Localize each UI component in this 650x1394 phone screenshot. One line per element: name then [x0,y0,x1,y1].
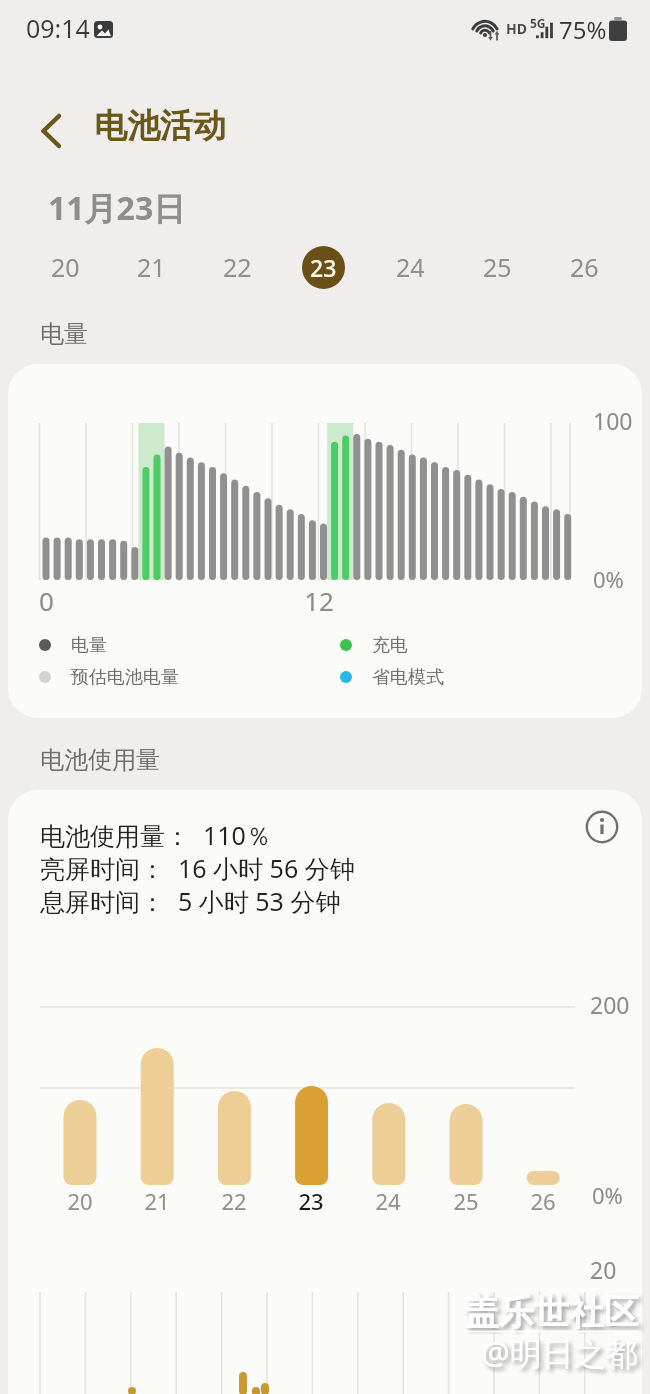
button[interactable]: 24 [367,245,454,289]
button[interactable]: 21 [108,245,194,289]
button[interactable]: 26 [541,245,628,289]
staticText: 充电 [372,634,408,657]
staticText: 20 [67,1186,93,1216]
button[interactable]: 22 [194,245,280,289]
staticText: 22 [223,250,252,284]
staticText: 23 [310,252,337,283]
staticText: 25 [453,1186,479,1216]
staticText: 电池活动 [94,105,226,147]
staticText: 24 [375,1186,401,1216]
staticText: 0 [39,583,54,618]
button[interactable]: 23 [280,245,367,289]
staticText: 22 [221,1186,247,1216]
staticText: 20 [51,250,80,284]
staticText: 电池使用量 [40,745,160,775]
button[interactable]: 20 [22,245,108,289]
staticText: 0% [593,564,624,594]
staticText: 26 [530,1186,556,1216]
staticText: 亮屏时间： 16 小时 56 分钟 [40,851,355,885]
staticText: 24 [396,250,425,284]
button[interactable] [585,810,619,844]
staticText: 电量 [71,634,107,657]
staticText: 200 [590,989,630,1020]
staticText: 21 [137,250,166,284]
staticText: 100 [593,405,633,436]
button[interactable]: 25 [454,245,541,289]
staticText: 0% [592,1180,623,1210]
staticText: 75% [559,13,607,46]
staticText: 23 [298,1186,324,1216]
staticText: 21 [144,1186,170,1216]
staticText: 5G [530,15,546,31]
staticText: 预估电池电量 [71,666,179,689]
staticText: 盖乐世社区 [464,1290,639,1334]
staticText: 11月23日 [48,186,186,230]
staticText: 电量 [40,319,88,349]
staticText: 20 [590,1254,617,1285]
staticText: 电池使用量： 110％ [40,818,271,852]
staticText: 09:14 [26,11,90,45]
staticText: 25 [483,250,512,284]
staticText: 息屏时间： 5 小时 53 分钟 [40,884,341,918]
staticText: 26 [570,250,599,284]
button[interactable] [26,105,78,157]
staticText: 12 [304,583,334,618]
staticText: @明日之都 [481,1331,638,1375]
staticText: HD [506,19,527,38]
staticText: 省电模式 [372,666,444,689]
